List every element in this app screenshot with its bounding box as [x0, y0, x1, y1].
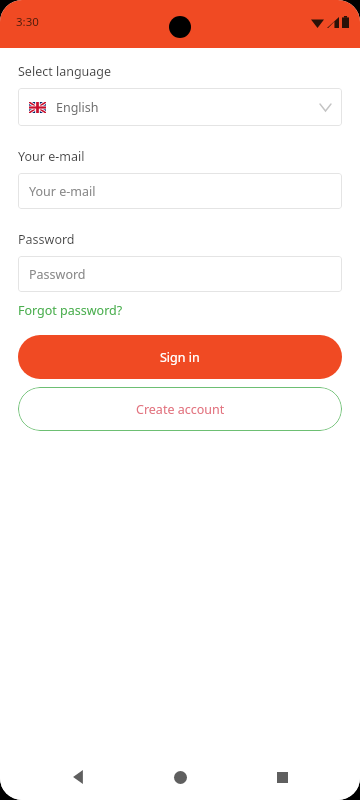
staticText: 3:30	[16, 14, 39, 30]
button[interactable]: Home	[156, 754, 204, 800]
button[interactable]: English	[18, 88, 342, 126]
staticText: Your e-mail	[18, 148, 85, 165]
staticText: Password	[29, 266, 86, 283]
staticText: Your e-mail	[29, 183, 96, 200]
button[interactable]: Back	[54, 754, 102, 800]
button[interactable]: Recents	[258, 754, 306, 800]
button[interactable]: Create account	[18, 387, 342, 431]
staticText: English	[56, 99, 99, 116]
staticText: Password	[18, 231, 75, 248]
staticText: Forgot password?	[18, 302, 123, 319]
button[interactable]: Forgot password?	[18, 302, 123, 319]
staticText: Create account	[136, 401, 225, 418]
button[interactable]: Your e-mail	[18, 173, 342, 209]
button[interactable]: Sign in	[18, 335, 342, 379]
staticText: Sign in	[160, 349, 200, 366]
button[interactable]: Password	[18, 256, 342, 292]
staticText: Select language	[18, 63, 112, 80]
